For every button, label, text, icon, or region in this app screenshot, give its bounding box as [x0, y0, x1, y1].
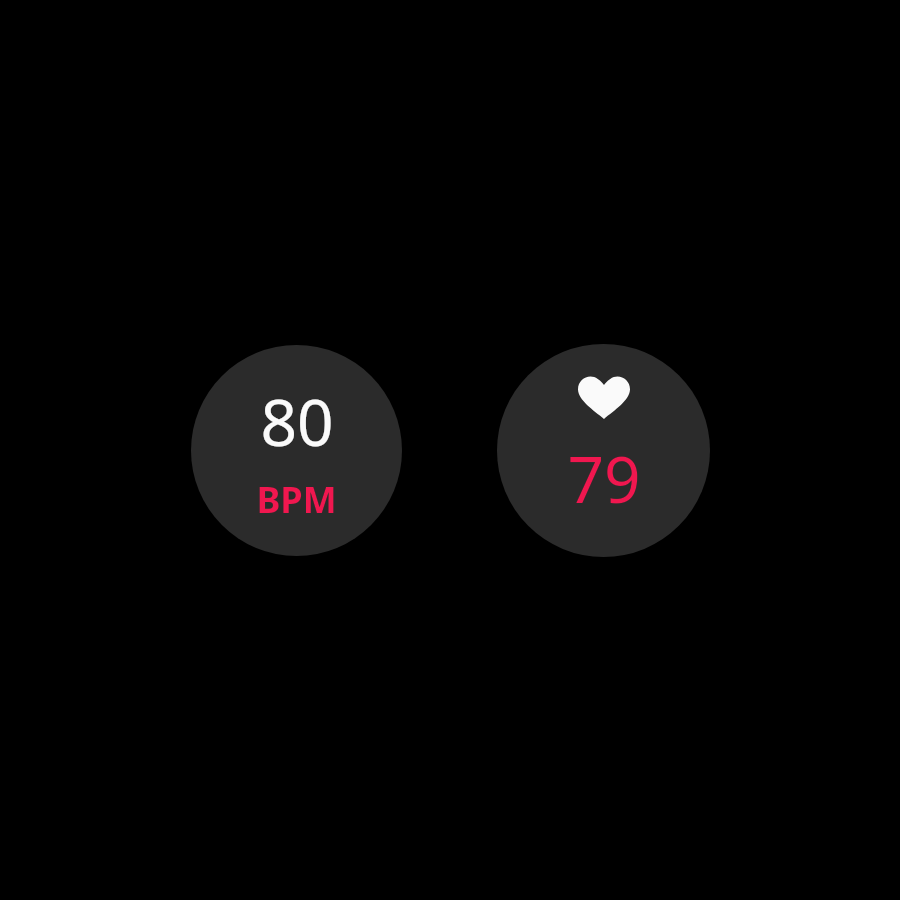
button[interactable]: Heart rate [497, 344, 710, 557]
staticText: 79 [567, 435, 641, 522]
button[interactable]: 80 [191, 345, 402, 556]
staticText: 80 [260, 378, 334, 465]
staticText: BPM [256, 475, 337, 524]
